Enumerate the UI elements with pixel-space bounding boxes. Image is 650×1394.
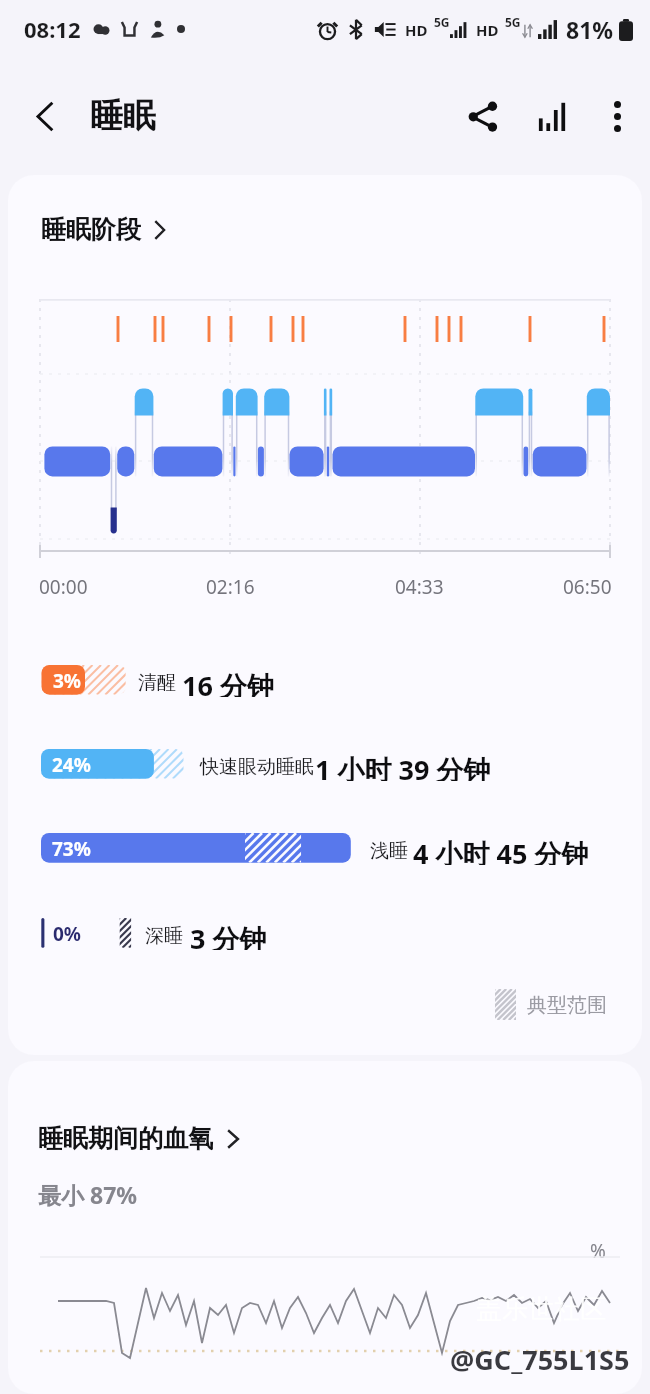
- staticText: 73%: [52, 836, 91, 862]
- staticText: 典型范围: [527, 993, 607, 1018]
- staticText: 24%: [52, 752, 91, 778]
- staticText: 4 小时 45 分钟: [413, 835, 589, 865]
- staticText: 最小 87%: [38, 1179, 138, 1210]
- staticText: HD: [476, 20, 499, 40]
- staticText: 16 分钟: [182, 667, 274, 697]
- staticText: 睡眠期间的血氧: [38, 1123, 213, 1154]
- staticText: 深睡: [145, 924, 183, 948]
- staticText: 1 小时 39 分钟: [315, 751, 491, 781]
- staticText: 00:00: [39, 574, 88, 600]
- staticText: 3%: [53, 668, 82, 694]
- staticText: 睡眠阶段: [41, 214, 141, 245]
- staticText: 快速眼动睡眠: [200, 755, 314, 779]
- staticText: 06:50: [563, 574, 612, 600]
- staticText: 04:33: [395, 574, 444, 600]
- button[interactable]: 睡眠阶段: [31, 205, 176, 254]
- staticText: 盖乐世社区: [476, 1293, 606, 1326]
- staticText: 浅睡: [370, 839, 408, 863]
- button[interactable]: More options: [586, 85, 648, 147]
- button[interactable]: 睡眠期间的血氧: [30, 1115, 248, 1162]
- staticText: 睡眠: [90, 95, 156, 137]
- staticText: 02:16: [206, 574, 255, 600]
- staticText: 5G: [505, 14, 521, 30]
- staticText: 5G: [434, 14, 450, 30]
- staticText: @GC_755L1S5: [450, 1341, 630, 1378]
- staticText: 08:12: [24, 14, 81, 44]
- button[interactable]: Back: [14, 85, 76, 147]
- staticText: 0%: [53, 921, 82, 947]
- staticText: 3 分钟: [190, 920, 267, 950]
- staticText: 清醒: [138, 671, 176, 695]
- button[interactable]: Share: [452, 85, 514, 147]
- staticText: %: [590, 1238, 606, 1264]
- button[interactable]: Statistics: [522, 85, 584, 147]
- staticText: HD: [405, 20, 428, 40]
- staticText: 81%: [566, 14, 614, 45]
